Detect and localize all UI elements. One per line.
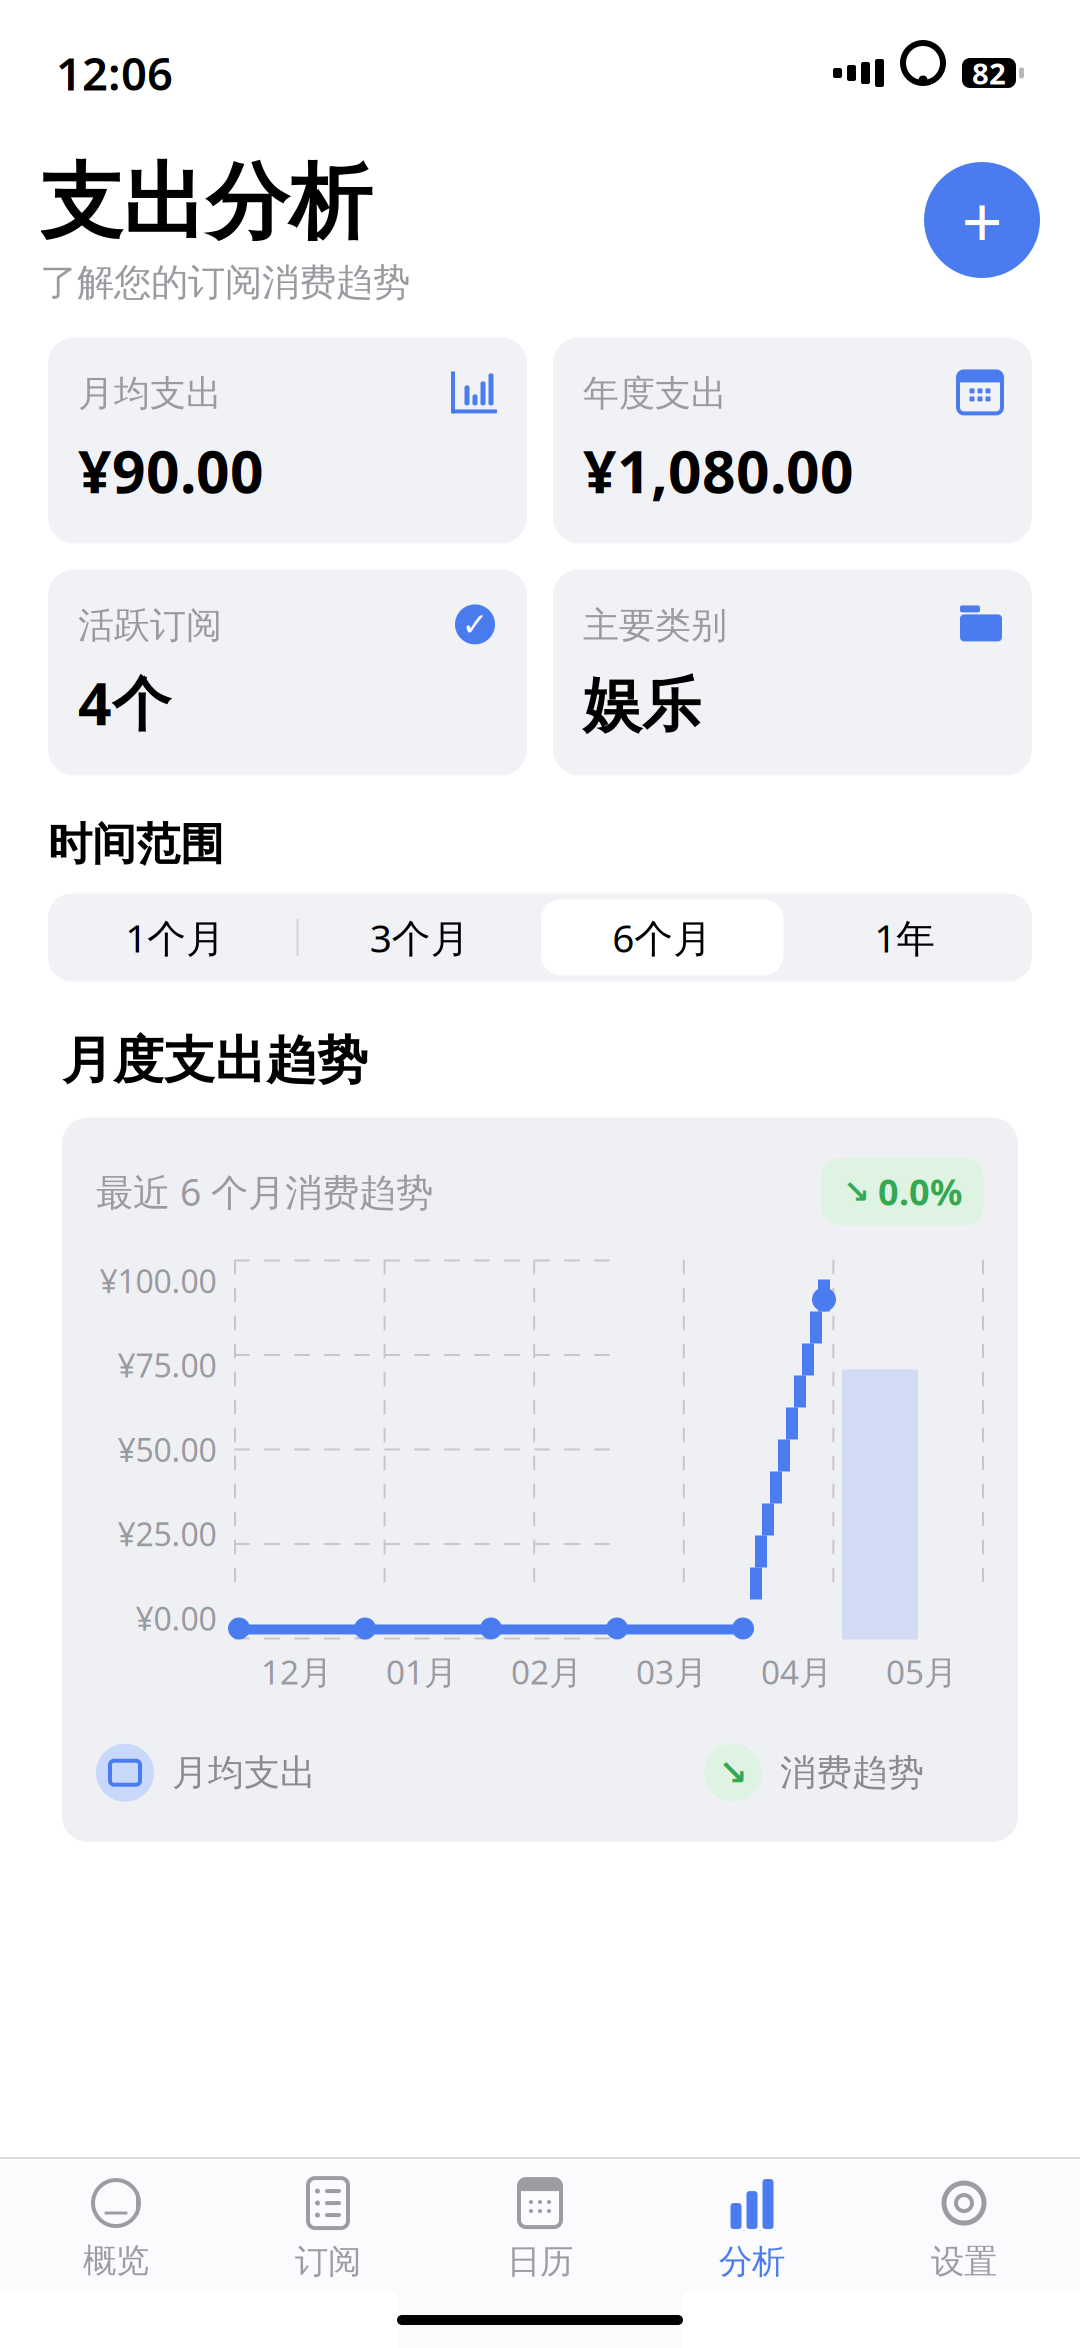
- staticText: 1个月: [125, 912, 225, 963]
- staticText: 最近 6 个月消费趋势: [96, 1167, 433, 1216]
- button[interactable]: 活跃订阅: [48, 569, 527, 775]
- staticText: 订阅: [295, 2241, 361, 2282]
- staticText: 月度支出趋势: [62, 1029, 368, 1092]
- button[interactable]: 概览: [10, 2160, 222, 2291]
- staticText: 82: [972, 53, 1006, 92]
- staticText: 了解您的订阅消费趋势: [40, 259, 410, 305]
- button[interactable]: 设置: [858, 2159, 1070, 2292]
- button[interactable]: 分析: [646, 2159, 858, 2292]
- staticText: ✓: [461, 606, 488, 642]
- staticText: ¥100.00: [99, 1259, 216, 1302]
- staticText: 设置: [931, 2241, 997, 2282]
- staticText: 05月: [886, 1649, 957, 1694]
- staticText: ¥0.00: [135, 1597, 216, 1639]
- staticText: 概览: [83, 2240, 149, 2281]
- staticText: 1年: [874, 912, 935, 963]
- staticText: ¥90.00: [78, 431, 264, 509]
- staticText: +: [961, 172, 1002, 268]
- staticText: ↘: [718, 1753, 747, 1792]
- staticText: 月均支出: [172, 1751, 316, 1795]
- staticText: 活跃订阅: [78, 603, 222, 648]
- staticText: 6个月: [612, 912, 712, 963]
- button[interactable]: 订阅: [222, 2159, 434, 2292]
- staticText: ↘: [843, 1173, 870, 1210]
- button[interactable]: 6个月: [541, 899, 783, 975]
- staticText: 月均支出: [78, 371, 222, 416]
- staticText: 03月: [636, 1649, 707, 1694]
- button[interactable]: 添加: [924, 162, 1040, 278]
- button[interactable]: 年度支出: [553, 337, 1032, 543]
- staticText: 02月: [511, 1649, 582, 1694]
- staticText: ¥25.00: [117, 1513, 216, 1555]
- staticText: ¥50.00: [117, 1428, 216, 1471]
- staticText: 12月: [261, 1649, 332, 1694]
- staticText: 4个: [78, 663, 171, 741]
- staticText: 01月: [386, 1649, 457, 1694]
- staticText: 时间范围: [48, 817, 224, 871]
- staticText: 0.0%: [878, 1168, 962, 1215]
- staticText: 消费趋势: [780, 1751, 924, 1795]
- button[interactable]: 3个月: [298, 899, 541, 975]
- staticText: 3个月: [370, 912, 470, 963]
- staticText: 支出分析: [40, 152, 372, 253]
- staticText: 分析: [719, 2241, 785, 2282]
- button[interactable]: 主要类别: [553, 569, 1032, 775]
- button[interactable]: 1个月: [54, 899, 296, 975]
- button[interactable]: 月均支出: [48, 337, 527, 543]
- staticText: 主要类别: [583, 603, 727, 648]
- staticText: 12:06: [56, 43, 173, 103]
- button[interactable]: 1年: [783, 899, 1026, 975]
- staticText: ¥1,080.00: [583, 431, 854, 509]
- staticText: 04月: [761, 1649, 832, 1694]
- staticText: 娱乐: [583, 669, 701, 741]
- staticText: 日历: [507, 2241, 573, 2282]
- staticText: ¥75.00: [117, 1344, 216, 1386]
- button[interactable]: 日历: [434, 2159, 646, 2292]
- staticText: 年度支出: [583, 371, 727, 416]
